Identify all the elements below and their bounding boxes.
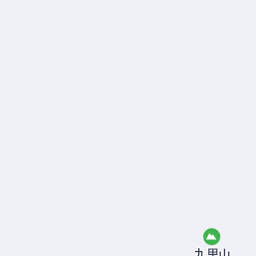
button[interactable]: 九里山 bbox=[194, 247, 231, 256]
button[interactable]: 九里山 mountain point of interest bbox=[201, 226, 222, 247]
staticText: 九里山 bbox=[195, 248, 232, 256]
staticText: 九里山 bbox=[193, 247, 230, 256]
staticText: 九里山 bbox=[195, 246, 232, 256]
staticText: 九里山 bbox=[193, 248, 230, 256]
staticText: 九里山 bbox=[194, 248, 231, 256]
staticText: 九里山 bbox=[194, 246, 231, 256]
staticText: 九里山 bbox=[193, 246, 230, 256]
staticText: 九里山 bbox=[195, 247, 232, 256]
